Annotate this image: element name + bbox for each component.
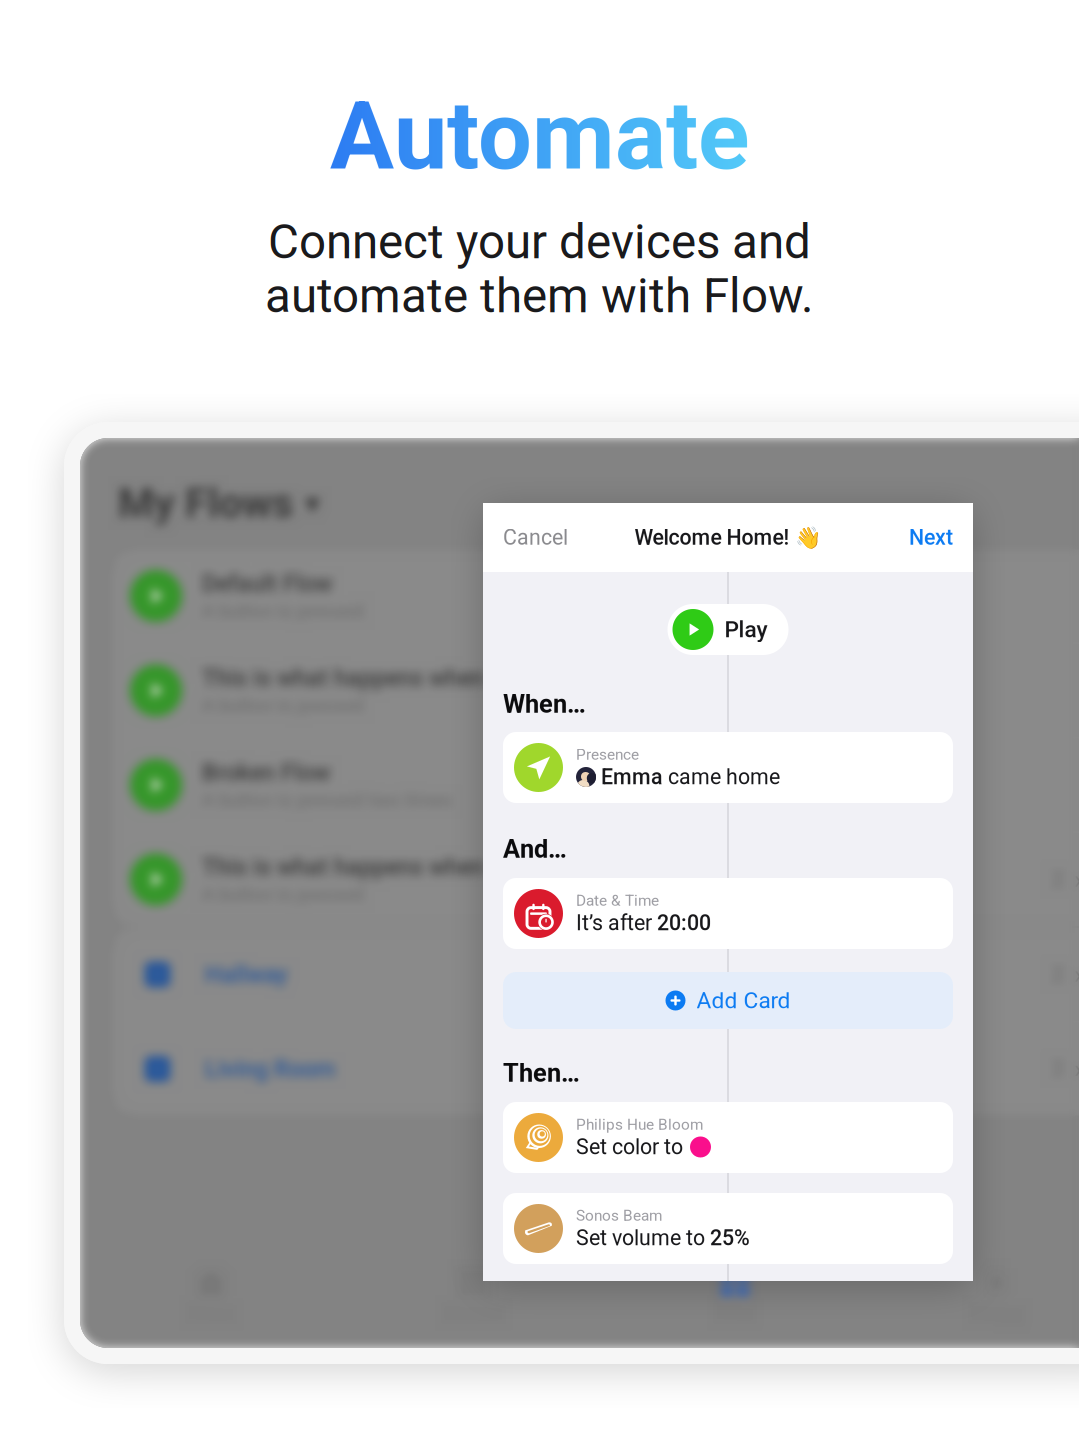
staticText: 25% <box>710 1225 750 1250</box>
button[interactable]: Cancel <box>503 525 568 550</box>
staticText: Default Flow <box>202 570 332 597</box>
staticText: Connect your devices and <box>268 214 811 270</box>
staticText: This is what happens when a button is pr… <box>202 664 785 692</box>
button[interactable]: Philips Hue Bloom <box>503 1102 953 1173</box>
staticText: Sonos Beam <box>576 1206 662 1224</box>
button[interactable]: Play <box>667 604 788 655</box>
staticText: This is what happens when a button is pr… <box>202 853 689 881</box>
staticText: Emma <box>601 764 663 789</box>
staticText: › <box>1074 1053 1079 1085</box>
button[interactable]: Add Card <box>503 972 953 1029</box>
staticText: Cancel <box>503 525 568 550</box>
button[interactable]: Flows <box>80 1244 342 1348</box>
staticText: ▾ <box>305 486 320 520</box>
staticText: And… <box>503 834 567 864</box>
staticText: My Flows <box>118 479 293 527</box>
staticText: Hallway <box>205 961 287 988</box>
button[interactable]: Sonos Beam <box>503 1193 953 1264</box>
staticText: Living Room <box>205 1055 335 1083</box>
staticText: Next <box>909 525 953 550</box>
button[interactable]: This is what happens when a button is pr… <box>112 644 1079 737</box>
staticText: It’s after <box>576 910 652 935</box>
staticText: Play <box>724 616 767 643</box>
button[interactable]: This is what happens when a button is pr… <box>112 833 1079 926</box>
button[interactable]: Date & Time <box>503 878 953 949</box>
button[interactable]: Devices <box>342 1244 604 1348</box>
staticText: Broken Flow <box>202 759 330 786</box>
staticText: When… <box>503 689 586 719</box>
button[interactable]: Flow <box>604 1244 866 1348</box>
staticText: › <box>1074 959 1079 990</box>
staticText: Set color to <box>576 1134 683 1159</box>
button[interactable]: Presence <box>503 732 953 803</box>
staticText: Set volume to <box>576 1225 705 1250</box>
button[interactable]: Living Room <box>112 1022 1079 1115</box>
staticText: Then… <box>503 1058 580 1088</box>
button[interactable]: Energy <box>866 1244 1079 1348</box>
staticText: Philips Hue Bloom <box>576 1115 703 1133</box>
button[interactable]: Hallway <box>112 928 1079 1021</box>
staticText: came home <box>668 764 780 789</box>
staticText: Presence <box>576 745 639 763</box>
staticText: Date & Time <box>576 891 659 909</box>
staticText: 20:00 <box>657 910 711 935</box>
button[interactable]: Broken Flow <box>112 738 1079 831</box>
button[interactable]: Next <box>909 525 953 550</box>
staticText: Welcome Home! 👋 <box>634 525 821 550</box>
staticText: › <box>1074 864 1079 895</box>
staticText: Add Card <box>696 987 790 1014</box>
button[interactable]: Default Flow <box>112 549 1079 642</box>
staticText: automate them with Flow. <box>265 268 814 324</box>
